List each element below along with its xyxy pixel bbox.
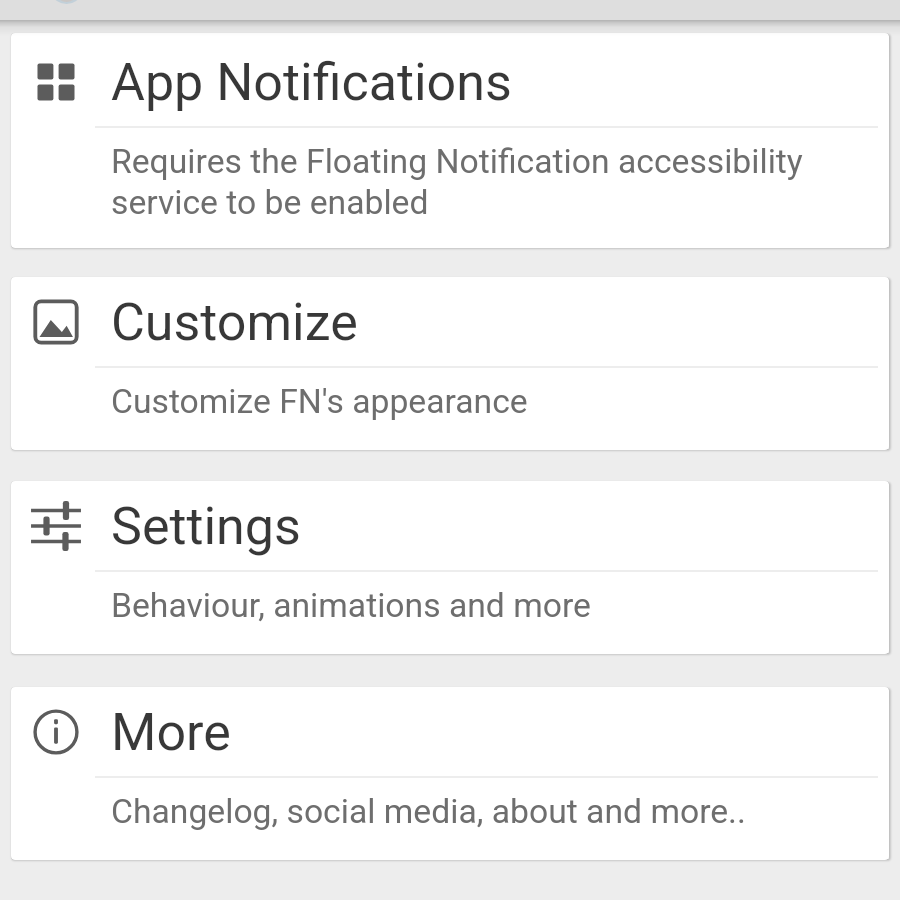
button[interactable]: Settings — [11, 481, 889, 654]
staticText: App Notifications — [111, 52, 512, 113]
other: App Notifications — [30, 56, 82, 108]
other: Customize — [30, 296, 82, 348]
staticText: Settings — [111, 496, 301, 557]
staticText: Changelog, social media, about and more.… — [111, 792, 746, 831]
staticText: Requires the Floating Notification acces… — [111, 142, 878, 223]
button[interactable]: More — [11, 687, 889, 860]
staticText: More — [111, 702, 231, 763]
button[interactable]: App Notifications — [11, 33, 889, 248]
staticText: Behaviour, animations and more — [111, 586, 591, 625]
staticText: Customize — [111, 292, 358, 353]
button[interactable]: Customize — [11, 277, 889, 450]
staticText: Customize FN's appearance — [111, 382, 528, 421]
other: Settings — [30, 500, 82, 552]
other: More — [30, 706, 82, 758]
